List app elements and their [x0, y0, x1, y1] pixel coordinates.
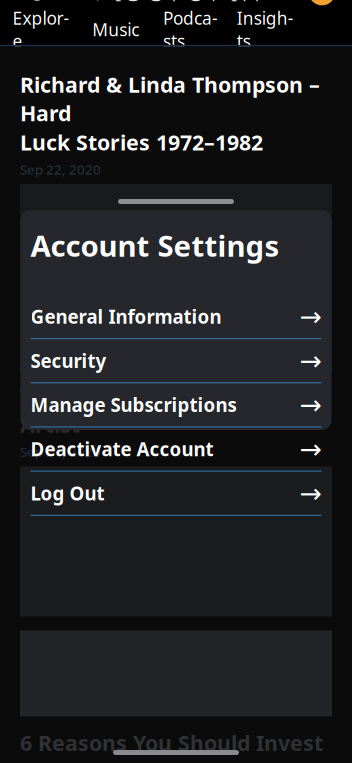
- staticText: I S C T O P I A: [114, 0, 258, 8]
- staticText: →: [299, 390, 321, 420]
- staticText: What NOT to Do as an Indie Artist: [20, 382, 314, 439]
- staticText: Richard & Linda Thompson – Hard: [20, 70, 320, 127]
- button[interactable]: Manage Subscriptions: [24, 383, 327, 426]
- staticText: Insights: [237, 7, 294, 53]
- staticText: Luck Stories 1972–1982: [20, 128, 263, 156]
- staticText: Account Settings: [30, 226, 279, 265]
- staticText: Log Out: [30, 481, 104, 506]
- button[interactable]: Insights: [236, 0, 294, 58]
- staticText: Podcasts: [163, 7, 218, 53]
- button[interactable]: Security: [24, 339, 327, 382]
- staticText: Security: [30, 348, 106, 373]
- button[interactable]: Log Out: [24, 472, 327, 515]
- staticText: Deactivate Account: [30, 437, 213, 461]
- button[interactable]: Music: [87, 11, 145, 47]
- button[interactable]: Podcasts: [162, 0, 219, 58]
- button[interactable]: Explore: [12, 0, 70, 58]
- staticText: →: [299, 301, 321, 332]
- staticText: ▷: [96, 0, 111, 3]
- staticText: →: [299, 434, 321, 464]
- staticText: Sep 22, 2020: [20, 160, 101, 178]
- staticText: Explore: [12, 7, 69, 53]
- staticText: →: [299, 478, 321, 508]
- button[interactable]: General Information: [24, 295, 327, 338]
- button[interactable]: Search: [12, 0, 50, 11]
- button[interactable]: Account: [304, 0, 340, 10]
- staticText: Music: [92, 18, 139, 41]
- staticText: 6 Reasons You Should Invest in: [20, 728, 323, 763]
- staticText: General Information: [30, 304, 221, 329]
- staticText: →: [299, 345, 321, 376]
- staticText: Manage Subscriptions: [30, 392, 236, 417]
- button[interactable]: Deactivate Account: [24, 428, 327, 471]
- staticText: Sep 21, 2020: [20, 443, 101, 460]
